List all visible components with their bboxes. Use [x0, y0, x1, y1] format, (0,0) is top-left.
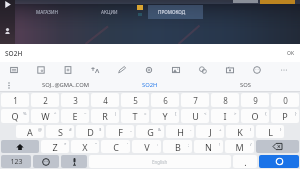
- button[interactable]: 123: [1, 155, 31, 168]
- button[interactable]: Stickers: [27, 62, 54, 78]
- staticText: SOJ..@GMA..COM: [42, 81, 89, 89]
- staticText: Q: [11, 110, 19, 122]
- staticText: M: [235, 141, 244, 153]
- button[interactable]: [0, 0, 15, 44]
- button[interactable]: .: [233, 155, 257, 168]
- staticText: D: [87, 126, 94, 138]
- staticText: >: [234, 111, 237, 117]
- staticText: +: [219, 127, 222, 133]
- button[interactable]: P: [271, 109, 299, 123]
- button[interactable]: D: [76, 125, 104, 138]
- staticText: ': [127, 142, 128, 148]
- button[interactable]: J: [196, 125, 224, 138]
- button[interactable]: More options: [0, 78, 18, 92]
- button[interactable]: Z: [41, 140, 69, 153]
- button[interactable]: Handwriting: [108, 62, 135, 78]
- staticText: 6: [163, 95, 168, 106]
- staticText: МАГАЗИН: [36, 9, 58, 15]
- button[interactable]: 1: [1, 93, 29, 107]
- staticText: Y: [162, 110, 168, 122]
- button[interactable]: Shift: [1, 140, 39, 153]
- button[interactable]: L: [256, 125, 284, 138]
- button[interactable]: SOS: [205, 78, 285, 92]
- staticText: _: [130, 127, 132, 133]
- button[interactable]: S: [46, 125, 74, 138]
- staticText: 4: [103, 95, 108, 106]
- staticText: |: [114, 111, 117, 117]
- button[interactable]: U: [181, 109, 209, 123]
- staticText: АКЦИИ: [101, 9, 118, 15]
- button[interactable]: 6: [151, 93, 179, 107]
- button[interactable]: Themes: [189, 62, 216, 78]
- button[interactable]: 5: [121, 93, 149, 107]
- button[interactable]: Clipboard: [0, 62, 27, 78]
- staticText: S: [58, 126, 63, 138]
- button[interactable]: 4: [91, 93, 119, 107]
- staticText: SOS: [240, 81, 251, 89]
- staticText: =: [144, 111, 147, 117]
- button[interactable]: Space: [89, 155, 231, 168]
- button[interactable]: Image: [162, 62, 189, 78]
- staticText: O: [251, 110, 259, 122]
- button[interactable]: 9: [241, 93, 269, 107]
- staticText: P: [282, 110, 288, 122]
- staticText: 1: [13, 95, 18, 106]
- button[interactable]: SO2H: [115, 78, 185, 92]
- button[interactable]: X: [71, 140, 99, 153]
- button[interactable]: T: [121, 109, 149, 123]
- button[interactable]: G: [136, 125, 164, 138]
- button[interactable]: F: [106, 125, 134, 138]
- staticText: F: [118, 126, 123, 138]
- button[interactable]: Translate: [81, 62, 108, 78]
- button[interactable]: Settings: [135, 62, 162, 78]
- button[interactable]: 7: [181, 93, 209, 107]
- button[interactable]: Enter: [259, 155, 299, 168]
- button[interactable]: [148, 5, 203, 19]
- staticText: G: [147, 126, 154, 138]
- button[interactable]: АКЦИИ: [97, 6, 122, 17]
- button[interactable]: Emoji: [33, 155, 59, 168]
- button[interactable]: 3: [61, 93, 89, 107]
- button[interactable]: Backspace: [256, 140, 299, 153]
- button[interactable]: 8: [211, 93, 239, 107]
- button[interactable]: H: [166, 125, 194, 138]
- button[interactable]: M: [225, 140, 254, 153]
- staticText: V: [144, 141, 150, 153]
- button[interactable]: Voice input: [61, 155, 87, 168]
- staticText: J: [209, 126, 212, 138]
- button[interactable]: GIF: [54, 62, 81, 78]
- button[interactable]: R: [91, 109, 119, 123]
- staticText: (: [250, 127, 252, 133]
- button[interactable]: 0: [271, 93, 299, 107]
- button[interactable]: Y: [151, 109, 179, 123]
- button[interactable]: W: [31, 109, 59, 123]
- button[interactable]: I: [211, 109, 239, 123]
- button[interactable]: More: [270, 62, 297, 78]
- button[interactable]: C: [101, 140, 130, 153]
- button[interactable]: B: [163, 140, 192, 153]
- staticText: ^: [54, 111, 57, 117]
- button[interactable]: Emoji: [243, 62, 270, 78]
- button[interactable]: V: [132, 140, 161, 153]
- button[interactable]: 2: [31, 93, 59, 107]
- button[interactable]: E: [61, 109, 89, 123]
- staticText: !: [219, 142, 221, 148]
- staticText: 8: [223, 95, 228, 106]
- button[interactable]: OK: [287, 50, 295, 57]
- staticText: ПРОМОКОД: [158, 9, 186, 15]
- staticText: 0: [283, 95, 288, 106]
- button[interactable]: Q: [1, 109, 29, 123]
- button[interactable]: N: [194, 140, 223, 153]
- button[interactable]: SOJ..@GMA..COM: [20, 78, 110, 92]
- button[interactable]: Camera: [216, 62, 243, 78]
- staticText: H: [177, 126, 184, 138]
- staticText: {: [265, 111, 267, 117]
- staticText: B: [175, 141, 181, 153]
- button[interactable]: O: [241, 109, 269, 123]
- staticText: ;: [188, 142, 190, 148]
- staticText: C: [113, 141, 119, 153]
- button[interactable]: K: [226, 125, 254, 138]
- button[interactable]: ПРОМОКОД: [155, 6, 189, 17]
- button[interactable]: МАГАЗИН: [30, 6, 63, 17]
- button[interactable]: A: [16, 125, 44, 138]
